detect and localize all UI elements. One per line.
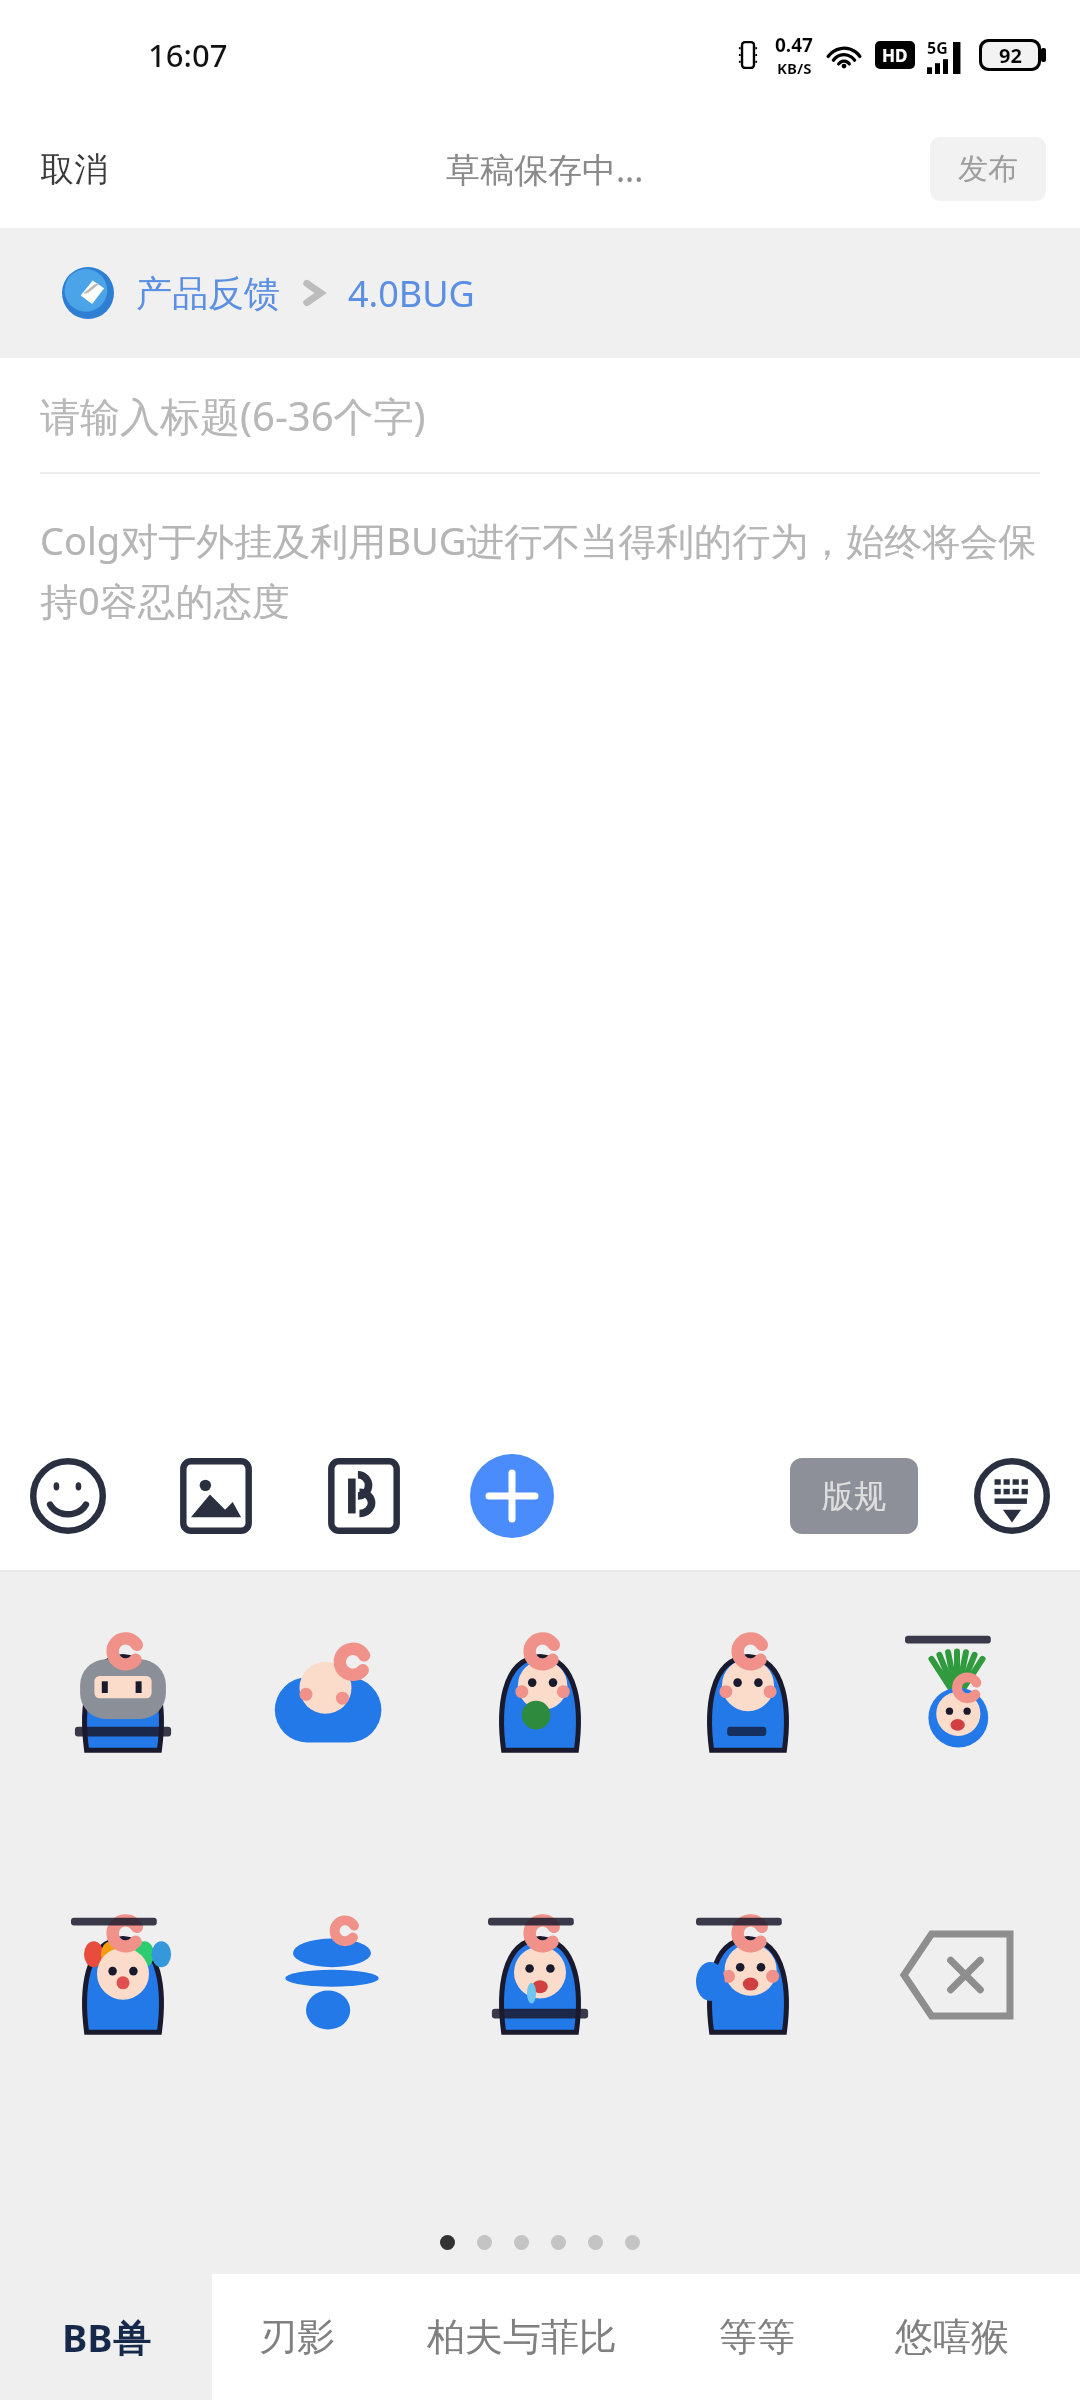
button[interactable]: 产品反馈 [0, 228, 1080, 358]
staticText: 发布 [958, 150, 1018, 188]
staticText: 版规 [822, 1476, 886, 1516]
button[interactable]: Sticker 3 [455, 1608, 625, 1778]
button[interactable]: Colg对于外挂及利用BUG进行不当得利的行为，始终将会保持0容忍的态度 [40, 514, 1046, 626]
button[interactable]: Sticker 10 [872, 1890, 1042, 2060]
button[interactable]: 等等 [662, 2274, 852, 2400]
button[interactable]: 取消 [24, 138, 124, 201]
staticText: 取消 [40, 148, 108, 191]
button[interactable]: Add [470, 1454, 554, 1538]
staticText: 0.47 [775, 32, 813, 58]
button[interactable]: 刃影 [212, 2274, 382, 2400]
button[interactable]: Keyboard [970, 1454, 1054, 1538]
staticText: Colg对于外挂及利用BUG进行不当得利的行为，始终将会保持0容忍的态度 [40, 514, 1046, 626]
staticText: 请输入标题(6-36个字) [40, 388, 426, 443]
button[interactable]: 发布 [930, 137, 1046, 201]
staticText: KB/S [777, 58, 812, 78]
button[interactable]: Sticker 1 [38, 1608, 208, 1778]
staticText: 柏夫与菲比 [427, 2313, 617, 2361]
button[interactable]: 悠嘻猴 [852, 2274, 1052, 2400]
staticText: 产品反馈 [136, 271, 280, 316]
button[interactable]: Sticker 4 [663, 1608, 833, 1778]
button[interactable]: 请输入标题(6-36个字) [0, 358, 1080, 472]
staticText: 草稿保存中... [446, 146, 644, 192]
staticText: 5G [927, 37, 948, 59]
button[interactable]: 版规 [790, 1458, 918, 1534]
staticText: 等等 [719, 2313, 795, 2361]
staticText: HD [882, 44, 908, 67]
button[interactable]: Emoji [26, 1454, 110, 1538]
button[interactable]: Sticker 2 [247, 1608, 417, 1778]
button[interactable]: Sticker 9 [663, 1890, 833, 2060]
staticText: 16:07 [148, 34, 228, 76]
button[interactable]: Sticker 7 [247, 1890, 417, 2060]
staticText: BB兽 [62, 2311, 151, 2363]
button[interactable]: Sticker 6 [38, 1890, 208, 2060]
staticText: 4.0BUG [348, 269, 475, 318]
staticText: 刃影 [259, 2313, 335, 2361]
button[interactable]: BB兽 [0, 2274, 212, 2400]
button[interactable]: 柏夫与菲比 [382, 2274, 662, 2400]
button[interactable]: Sticker 5 [872, 1608, 1042, 1778]
staticText: 92 [999, 42, 1022, 68]
staticText: 悠嘻猴 [895, 2313, 1009, 2361]
button[interactable]: Image [174, 1454, 258, 1538]
button[interactable]: Sticker 8 [455, 1890, 625, 2060]
button[interactable]: Bold [322, 1454, 406, 1538]
